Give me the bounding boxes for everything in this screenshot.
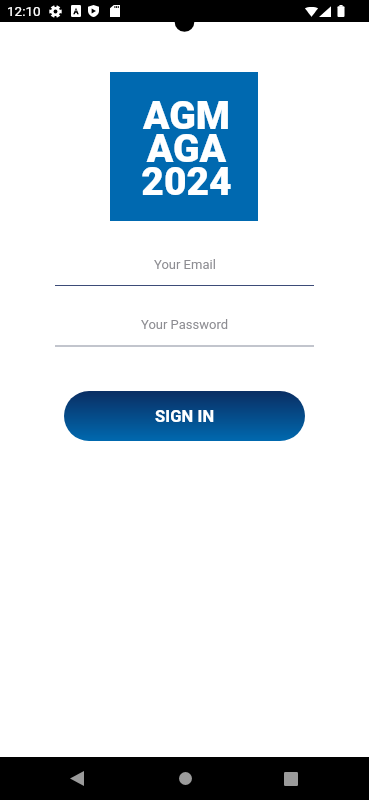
staticText: Your Email: [154, 257, 216, 272]
staticText: Your Password: [141, 317, 229, 332]
button[interactable]: SIGN IN: [64, 391, 305, 441]
staticText: AGM AGA 2024: [141, 93, 232, 204]
button[interactable]: Your Password: [55, 305, 314, 343]
button[interactable]: Home: [161, 757, 209, 800]
button[interactable]: Back: [53, 757, 101, 800]
staticText: 12:10: [7, 3, 41, 19]
button[interactable]: Recent apps: [267, 757, 315, 800]
staticText: SIGN IN: [155, 407, 215, 426]
button[interactable]: Your Email: [55, 245, 314, 283]
